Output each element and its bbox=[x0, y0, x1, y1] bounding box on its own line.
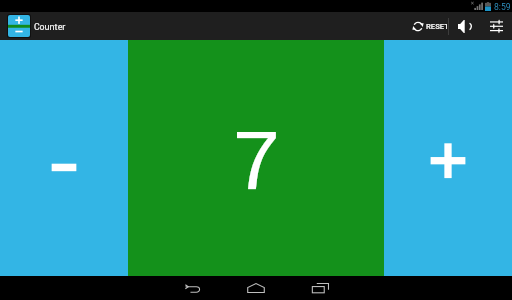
button[interactable]: 7 bbox=[128, 40, 384, 276]
staticText: 8:59 bbox=[494, 2, 511, 12]
button[interactable]: Home bbox=[232, 276, 280, 300]
button[interactable]: RESET bbox=[406, 12, 447, 40]
button[interactable]: Decrement bbox=[0, 40, 128, 276]
button[interactable]: Recents bbox=[296, 276, 344, 300]
button[interactable]: Settings bbox=[484, 12, 508, 40]
button[interactable]: App icon bbox=[8, 15, 30, 37]
staticText: Counter bbox=[34, 21, 66, 34]
staticText: 7 bbox=[234, 105, 280, 221]
button[interactable]: Back bbox=[168, 276, 216, 300]
button[interactable]: Volume bbox=[452, 12, 476, 40]
button[interactable]: Increment bbox=[384, 40, 512, 276]
staticText: RESET bbox=[426, 22, 447, 31]
